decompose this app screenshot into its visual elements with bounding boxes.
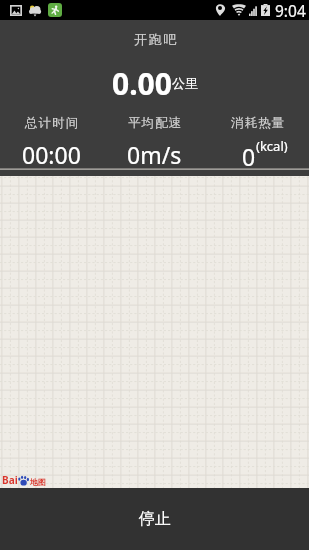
other: Running tracker notification — [48, 3, 62, 17]
staticText: 00:00 — [22, 139, 81, 170]
staticText: 0m/s — [127, 139, 182, 170]
staticText: 9:04 — [275, 0, 306, 20]
staticText: 0.00 — [112, 63, 172, 104]
button[interactable]: 总计时间 — [0, 115, 103, 170]
staticText: 平均配速 — [128, 115, 183, 131]
staticText: (kcal) — [256, 137, 288, 155]
other: Screenshot captured — [10, 5, 22, 16]
button[interactable]: 平均配速 — [103, 115, 206, 170]
staticText: 开跑吧 — [134, 31, 178, 47]
other: Weather — [28, 4, 42, 17]
staticText: 停止 — [139, 509, 171, 529]
staticText: 公里 — [172, 75, 198, 91]
button[interactable]: 停止 — [0, 488, 309, 550]
button[interactable]: 消耗热量 — [206, 115, 309, 170]
staticText: 消耗热量 — [231, 115, 286, 131]
button[interactable]: Route map — [0, 176, 309, 488]
staticText: 0 — [242, 141, 256, 172]
staticText: 地图 — [30, 477, 46, 487]
staticText: Bai — [2, 473, 18, 487]
staticText: 总计时间 — [25, 115, 80, 131]
